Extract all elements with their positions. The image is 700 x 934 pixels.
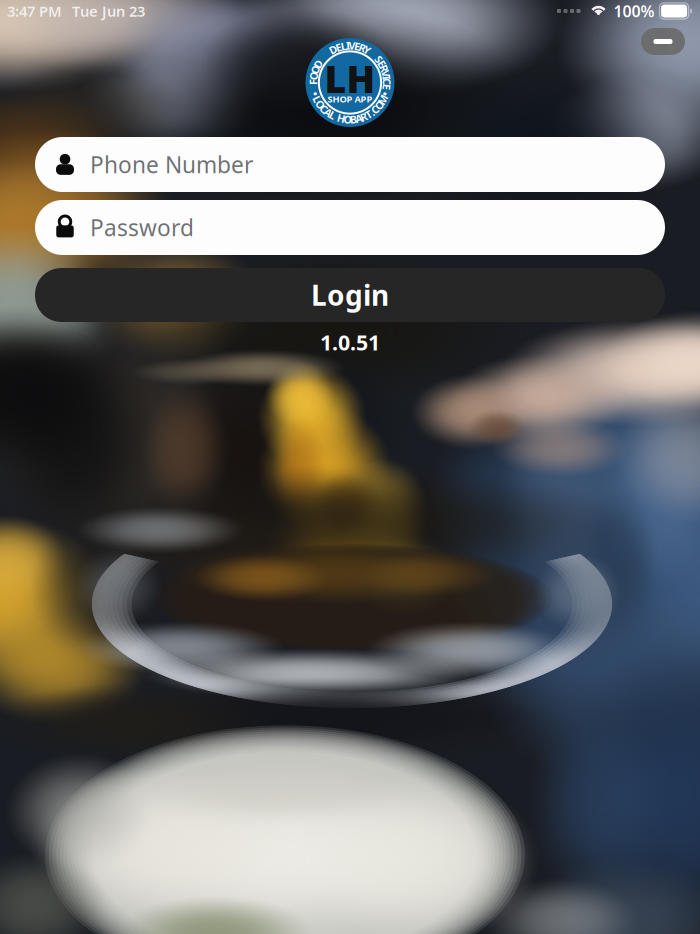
staticText: O [311,63,319,77]
staticText: 1.0.51 [320,328,380,356]
staticText: L [330,108,336,122]
staticText: . [370,105,373,119]
staticText: A [325,105,332,119]
staticText: I [346,38,350,53]
staticText: C [320,102,327,116]
button[interactable]: Minimize [641,28,685,55]
staticText: L [314,92,320,106]
staticText [335,110,338,124]
staticText: C [383,74,390,89]
staticText: H [337,111,345,125]
staticText: 100% [613,0,654,22]
staticText: LH [324,54,375,103]
staticText: • [383,87,387,101]
staticText: D [314,57,322,71]
staticText: O [316,97,324,111]
staticText: V [382,66,389,81]
staticText: R [360,110,367,124]
staticText: C [372,102,379,117]
staticText: O [343,112,351,126]
staticText: E [336,40,342,54]
staticText: R [359,41,366,55]
staticText: F [310,75,316,89]
button[interactable]: Password [35,200,665,255]
staticText: R [381,61,388,76]
staticText: Tue Jun 23 [72,1,145,21]
staticText: B [350,112,357,126]
staticText: S [376,52,382,66]
staticText: O [310,69,318,83]
staticText: V [348,38,355,53]
staticText: E [384,80,390,94]
staticText: Y [364,43,371,57]
staticText: Login [311,276,389,314]
staticText: L [341,39,347,53]
staticText: SHOP APP [327,93,372,105]
staticText: M [378,93,388,107]
staticText: E [379,57,385,71]
staticText: E [354,39,360,53]
staticText: Password [90,212,194,242]
staticText: T [366,107,372,121]
button[interactable]: Login [35,268,665,322]
staticText: D [329,42,337,57]
staticText: O [375,98,383,112]
staticText: Phone Number [90,149,253,179]
staticText: I [385,70,389,85]
staticText: 3:47 PM [7,1,62,21]
button[interactable]: Phone Number [35,137,665,192]
staticText: • [313,87,317,101]
staticText: A [355,111,362,125]
